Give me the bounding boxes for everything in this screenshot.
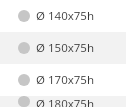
staticText: Ø 140x75h xyxy=(36,8,95,24)
button[interactable]: Ø 170x75h xyxy=(0,64,126,96)
button[interactable]: Ø 150x75h xyxy=(0,32,126,64)
button[interactable]: Ø 180x75h xyxy=(0,96,126,107)
staticText: Ø 180x75h xyxy=(36,96,95,107)
staticText: Ø 150x75h xyxy=(36,40,95,56)
staticText: Ø 170x75h xyxy=(36,72,95,88)
button[interactable]: Ø 140x75h xyxy=(0,0,126,32)
